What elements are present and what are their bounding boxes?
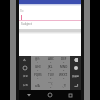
button[interactable]: JKL	[44, 64, 57, 72]
staticText: 6	[63, 69, 65, 72]
button[interactable]: a/A	[31, 81, 44, 90]
staticText: @/:	[35, 57, 40, 61]
staticText: あ	[23, 58, 27, 62]
button[interactable]: Back	[19, 90, 39, 100]
button[interactable]: Keyboard mode	[19, 64, 31, 72]
button[interactable]: Key	[70, 64, 81, 72]
button[interactable]: Home	[39, 90, 60, 100]
staticText: 9	[63, 77, 65, 80]
button[interactable]: ' " (	[44, 81, 57, 90]
staticText: PQRS	[34, 73, 42, 77]
button[interactable]: WXYZ	[57, 72, 70, 81]
staticText: DEF	[61, 57, 67, 61]
button[interactable]: TUV	[44, 72, 57, 81]
button[interactable]: .,?!	[57, 81, 70, 90]
staticText: Subject	[21, 22, 32, 26]
button[interactable]: Keyboard mode	[19, 81, 31, 90]
staticText: 1	[37, 61, 39, 64]
staticText: .,?!	[62, 84, 66, 88]
button[interactable]: GHI	[31, 64, 44, 72]
staticText: ABC	[48, 57, 54, 61]
staticText: 0	[50, 86, 52, 89]
button[interactable]: DEF	[57, 56, 70, 64]
staticText: WXYZ	[59, 73, 68, 77]
staticText: MNO	[60, 65, 68, 69]
staticText: 4	[37, 69, 39, 72]
button[interactable]: @/:	[31, 56, 44, 64]
staticText: GHI	[35, 65, 41, 69]
staticText: 設定	[23, 75, 28, 78]
staticText: 8	[50, 77, 52, 80]
staticText: To	[20, 9, 24, 13]
staticText: 記号	[23, 84, 28, 87]
staticText: 2	[50, 61, 52, 64]
button[interactable]: MNO	[57, 64, 70, 72]
button[interactable]: Key	[70, 72, 81, 81]
button[interactable]: PQRS	[31, 72, 44, 81]
button[interactable]: Key	[70, 81, 81, 90]
staticText: 次候補	[72, 75, 79, 78]
staticText: TUV	[48, 73, 54, 77]
staticText: ' " (	[48, 82, 53, 86]
staticText: 3	[63, 61, 65, 64]
button[interactable]: Keyboard mode	[19, 56, 31, 64]
staticText: a/A	[35, 84, 40, 88]
button[interactable]: Recent apps	[60, 90, 81, 100]
staticText: 7	[37, 77, 39, 80]
staticText: JKL	[48, 65, 53, 69]
button[interactable]: Key	[70, 56, 81, 64]
button[interactable]: ABC	[44, 56, 57, 64]
staticText: 5	[50, 69, 52, 72]
button[interactable]: Keyboard mode	[19, 72, 31, 81]
